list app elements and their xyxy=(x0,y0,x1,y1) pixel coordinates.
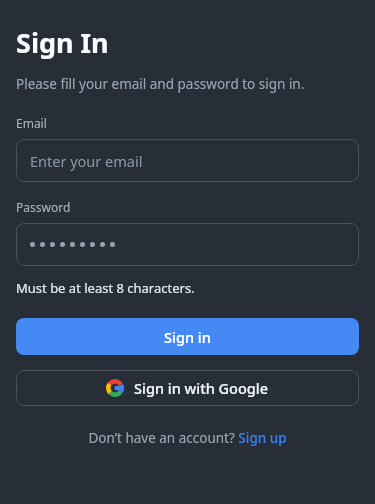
button[interactable]: Don’t have an account? Sign up xyxy=(16,429,359,447)
staticText: Email xyxy=(16,115,47,131)
button[interactable]: Enter your email xyxy=(16,139,359,182)
button[interactable]: Sign in xyxy=(16,318,359,355)
staticText: Don’t have an account? Sign up xyxy=(88,429,287,447)
staticText: Must be at least 8 characters. xyxy=(16,279,195,297)
staticText: Please fill your email and password to s… xyxy=(16,75,305,93)
staticText: Sign in xyxy=(164,327,211,347)
staticText: Enter your email xyxy=(30,151,143,171)
button[interactable]: Sign in with Google xyxy=(16,370,359,406)
staticText: Sign In xyxy=(16,24,109,61)
staticText: Sign in with Google xyxy=(134,378,269,398)
button[interactable] xyxy=(16,223,359,266)
staticText: Password xyxy=(16,199,71,215)
